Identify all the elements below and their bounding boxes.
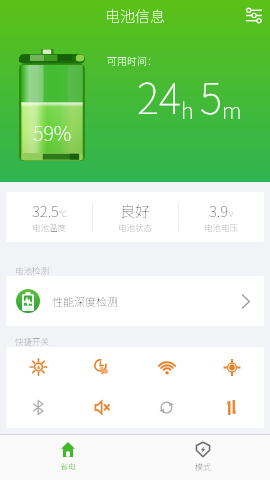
staticText: 省电 xyxy=(60,461,76,473)
button[interactable]: 模式 xyxy=(135,435,270,480)
button[interactable]: Sync xyxy=(134,387,199,428)
button[interactable]: 性能深度检测 xyxy=(6,276,264,326)
staticText: ℃ xyxy=(59,208,67,220)
staticText: 3.9 xyxy=(209,200,229,222)
button[interactable]: Bluetooth xyxy=(6,387,70,428)
button[interactable]: Wi-Fi xyxy=(134,347,199,387)
staticText: V xyxy=(229,208,234,220)
staticText: 32.5 xyxy=(32,200,59,222)
staticText: 电池状态 xyxy=(118,221,153,233)
staticText: 电池温度 xyxy=(32,221,67,233)
button[interactable]: GPS xyxy=(199,347,264,387)
button[interactable]: Screen timeout xyxy=(70,347,134,387)
button[interactable]: Brightness xyxy=(6,347,70,387)
staticText: 快捷开关 xyxy=(15,335,50,347)
staticText: 24 xyxy=(137,65,181,126)
button[interactable]: 省电 xyxy=(0,435,135,480)
staticText: 59% xyxy=(33,118,72,147)
button[interactable]: Settings xyxy=(240,1,268,29)
staticText: 性能深度检测 xyxy=(52,293,118,309)
staticText: 电池电压 xyxy=(204,221,239,233)
staticText: 可用时间： xyxy=(107,53,157,67)
staticText: 良好 xyxy=(120,200,151,222)
staticText: 模式 xyxy=(195,461,211,473)
staticText: 电池检测 xyxy=(15,264,50,276)
staticText: m xyxy=(222,93,242,125)
staticText: 电池信息 xyxy=(105,5,166,27)
staticText: h xyxy=(181,93,194,125)
button[interactable]: Mute xyxy=(70,387,134,428)
button[interactable]: Mobile data xyxy=(199,387,264,428)
staticText: 5 xyxy=(200,65,222,126)
